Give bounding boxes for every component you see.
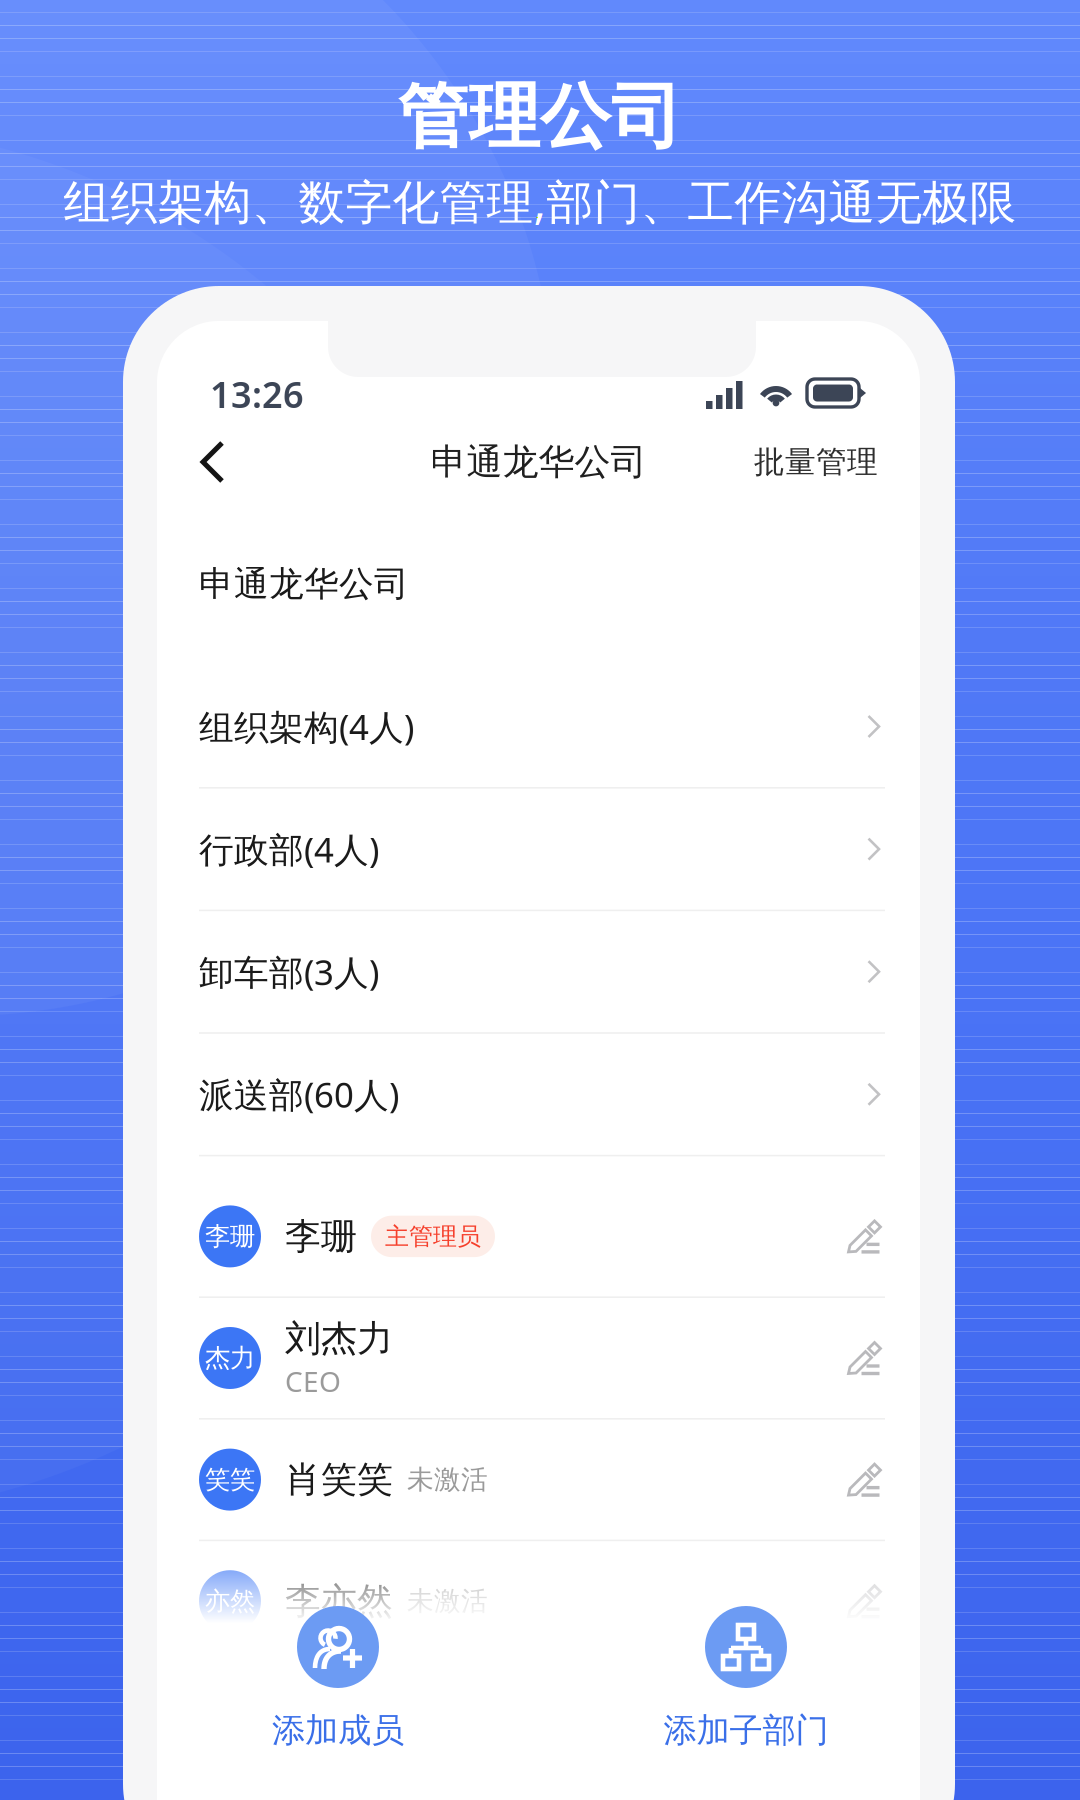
button[interactable]: 亦然 (157, 1541, 920, 1661)
staticText: 笑笑 (205, 1464, 255, 1495)
button[interactable]: 杰力 (157, 1298, 920, 1418)
staticText: 未激活 (407, 1463, 488, 1496)
staticText: 亦然 (205, 1586, 255, 1617)
staticText: 行政部(4人) (199, 826, 379, 872)
button[interactable]: 派送部(60人) (157, 1034, 920, 1155)
staticText: 添加子部门 (663, 1710, 828, 1751)
staticText: 刘杰力 (285, 1316, 393, 1360)
staticText: CEO (285, 1362, 341, 1400)
button[interactable]: 添加子部门 (636, 1606, 856, 1766)
button[interactable]: 返回 (199, 429, 269, 495)
button[interactable]: 李珊 (157, 1176, 920, 1296)
staticText: 王小伟 (285, 1701, 393, 1745)
button[interactable]: 组织架构(4人) (157, 666, 920, 787)
staticText: 添加成员 (272, 1710, 404, 1751)
staticText: 管理公司 (398, 74, 682, 160)
staticText: 主管理员 (385, 1222, 481, 1251)
staticText: 李珊 (285, 1214, 357, 1258)
staticText: 卸车部(3人) (199, 949, 379, 995)
staticText: 肖笑笑 (285, 1457, 393, 1502)
staticText: 申通龙华公司 (430, 440, 646, 484)
button[interactable]: 小伟 (157, 1663, 920, 1783)
button[interactable]: 笑笑 (157, 1420, 920, 1540)
staticText: 未激活 (407, 1585, 488, 1618)
staticText: 李珊 (205, 1221, 255, 1252)
button[interactable]: 添加成员 (228, 1606, 448, 1766)
button[interactable]: 卸车部(3人) (157, 911, 920, 1032)
staticText: 申通龙华公司 (199, 563, 409, 605)
staticText: 批量管理 (754, 443, 878, 481)
staticText: 13:26 (210, 370, 304, 418)
staticText: 组织架构(4人) (199, 703, 414, 749)
staticText: 杰力 (205, 1342, 255, 1373)
button[interactable]: 行政部(4人) (157, 789, 920, 910)
button[interactable]: 批量管理 (754, 429, 878, 495)
staticText: 派送部(60人) (199, 1071, 399, 1117)
staticText: 李亦然 (285, 1579, 393, 1623)
staticText: 组织架构、数字化管理,部门、工作沟通无极限 (63, 170, 1016, 232)
